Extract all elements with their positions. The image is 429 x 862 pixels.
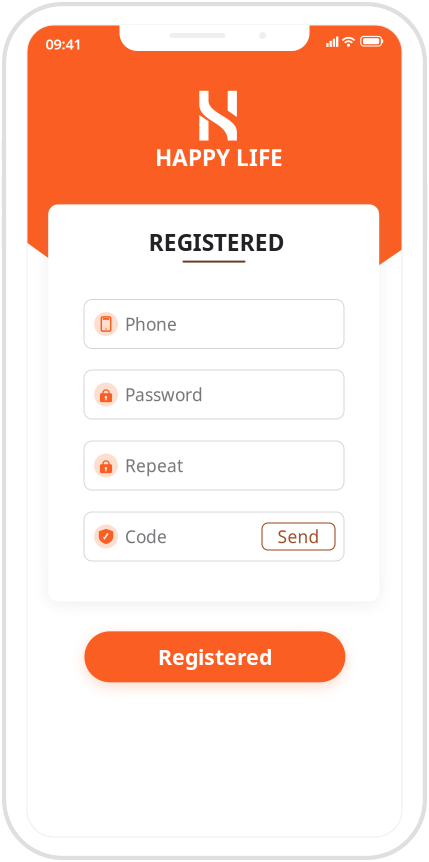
staticText: Phone xyxy=(125,312,177,335)
button[interactable]: Send xyxy=(262,523,335,550)
staticText: HAPPY LIFE xyxy=(155,142,283,172)
staticText: Repeat xyxy=(125,454,183,477)
staticText: 09:41 xyxy=(45,34,81,53)
staticText: Code xyxy=(125,525,167,548)
staticText: Registered xyxy=(158,643,272,671)
staticText: REGISTERED xyxy=(149,227,285,257)
button[interactable]: Registered xyxy=(84,631,345,682)
staticText: Send xyxy=(277,525,319,548)
staticText: Password xyxy=(125,383,203,406)
